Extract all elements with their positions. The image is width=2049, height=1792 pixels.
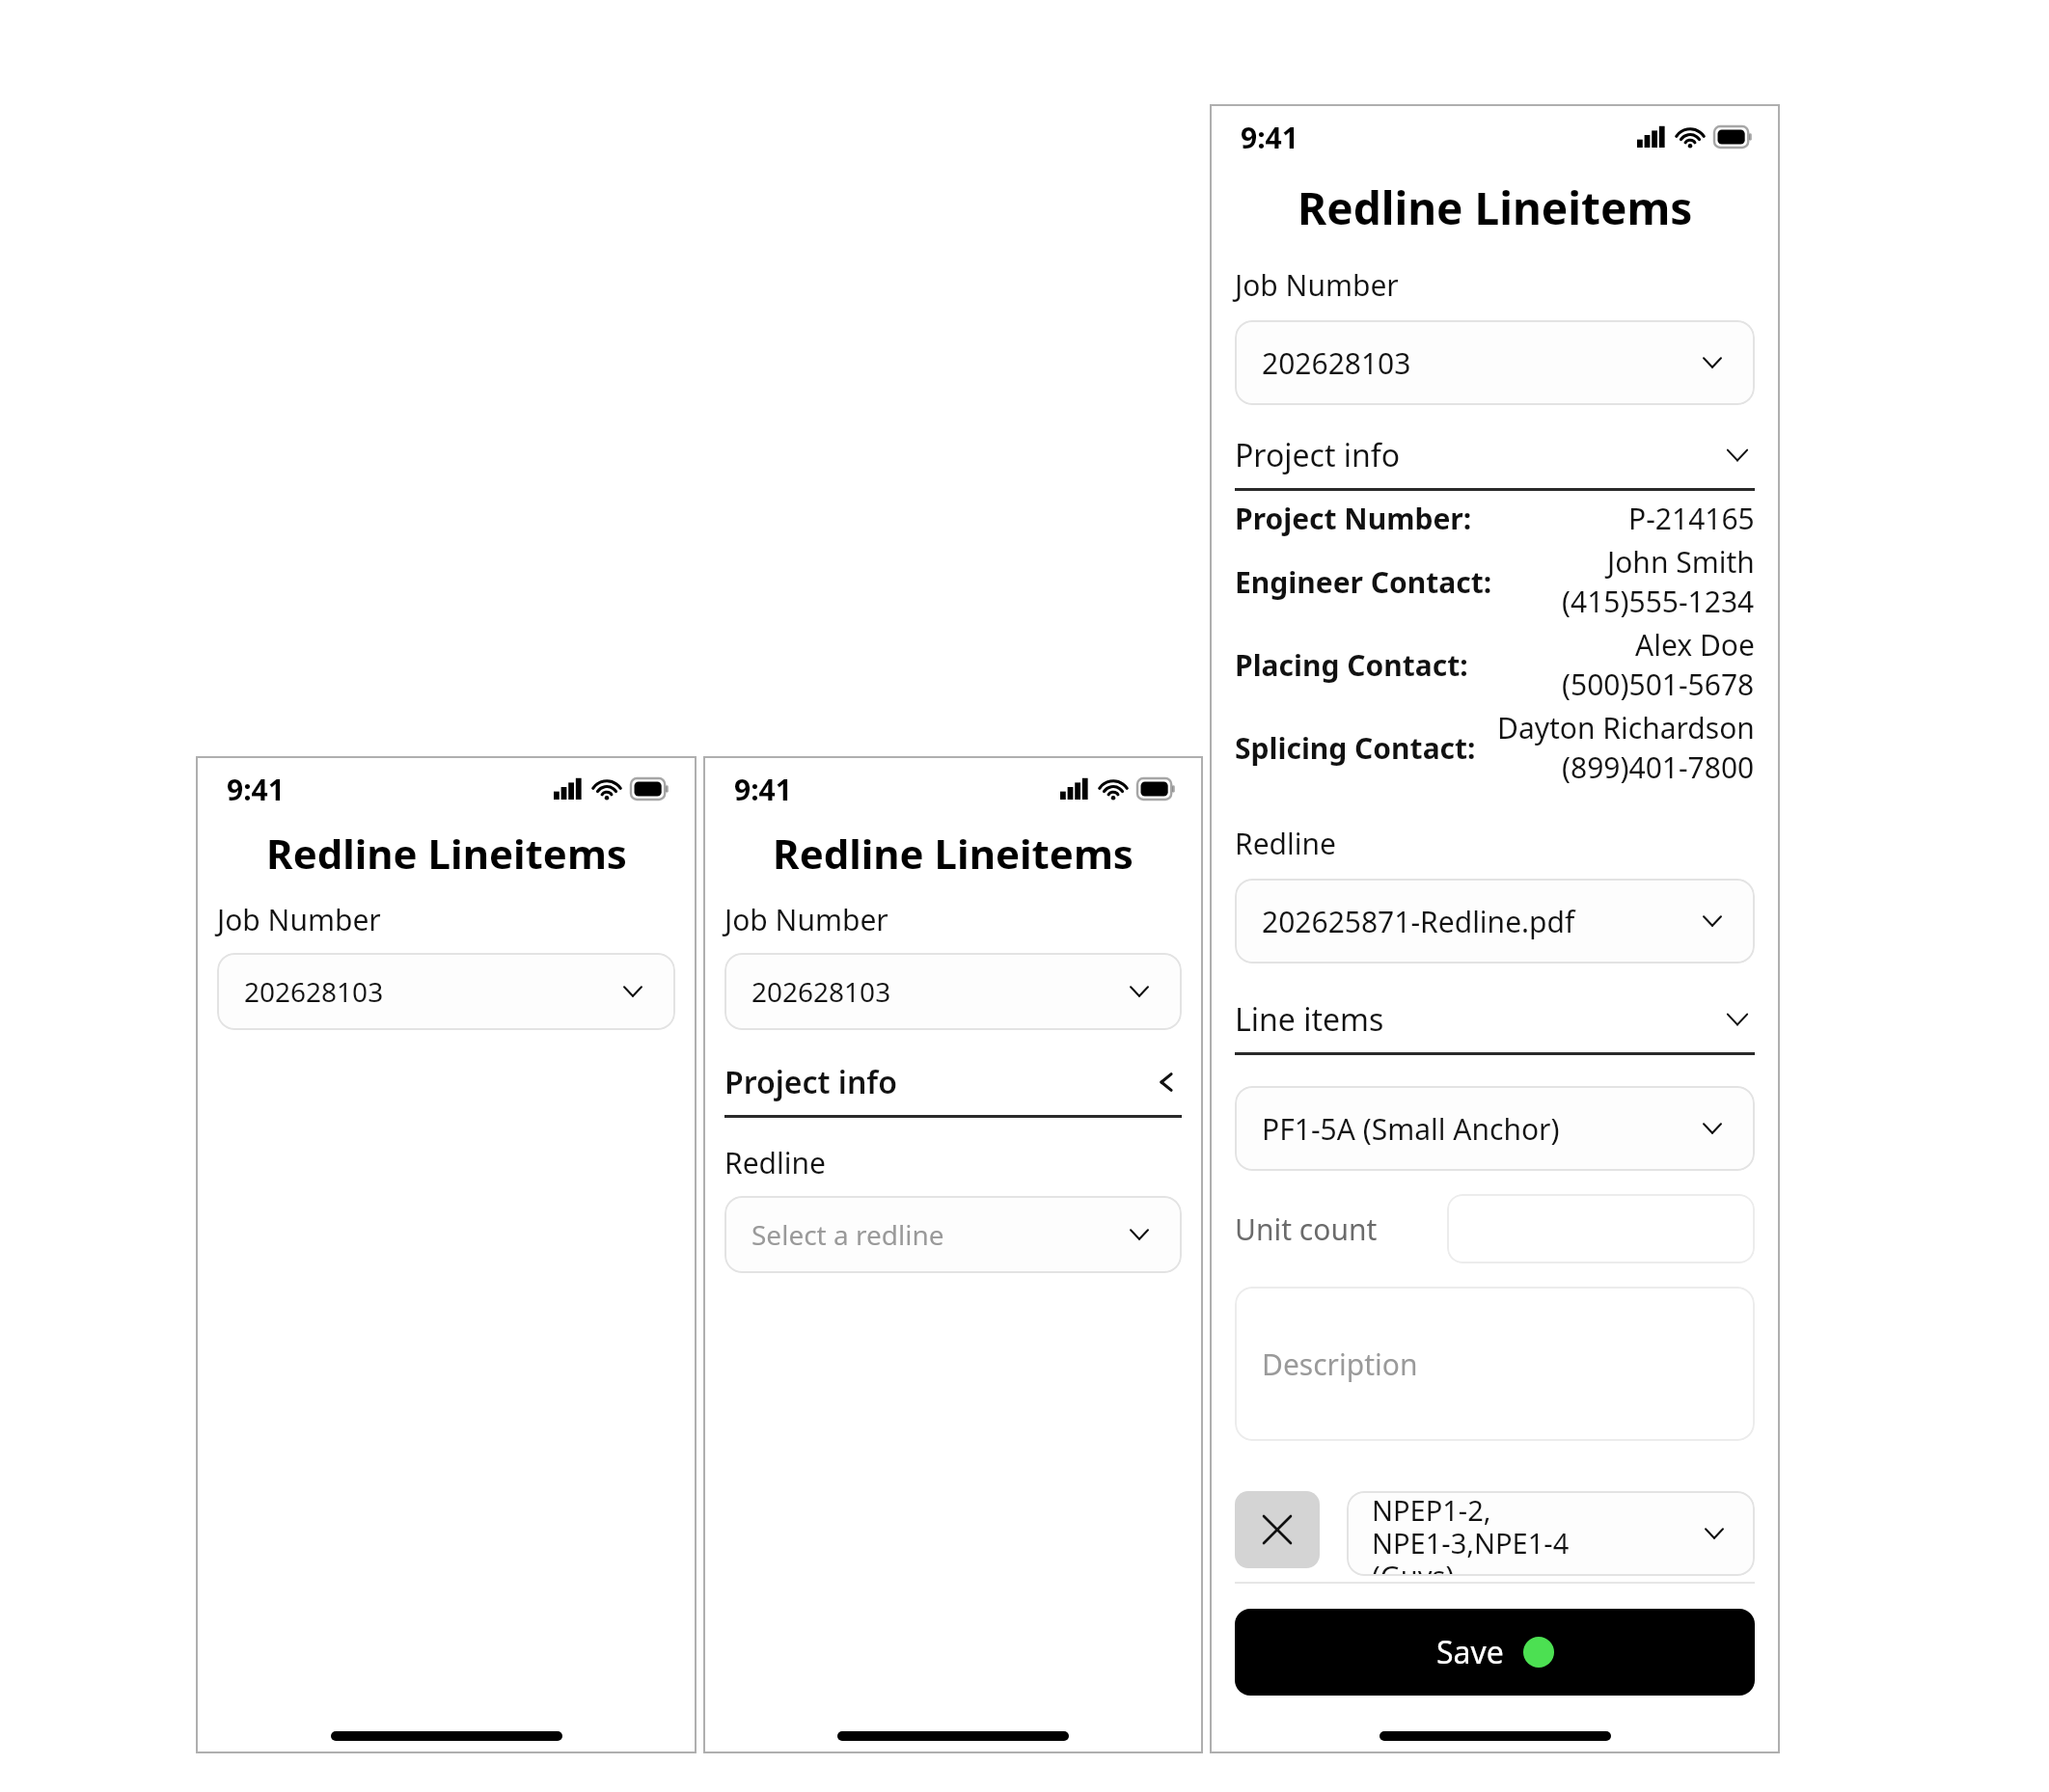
staticText: Select a redline: [751, 1216, 1108, 1253]
staticText: Description: [1262, 1344, 1418, 1384]
staticText: Alex Doe: [1635, 625, 1755, 665]
staticText: 9:41: [734, 770, 792, 809]
button[interactable]: 202628103: [724, 953, 1182, 1030]
staticText: Redline: [724, 1143, 826, 1182]
button[interactable]: NPEP1-2, NPE1-3,NPE1-4 (Guys): [1347, 1491, 1755, 1576]
staticText: Redline Lineitems: [773, 826, 1134, 881]
staticText: 202628103: [244, 973, 602, 1010]
staticText: 202628103: [751, 973, 1108, 1010]
staticText: Project info: [724, 1061, 1151, 1103]
staticText: Job Number: [1235, 265, 1399, 305]
staticText: Engineer Contact:: [1235, 562, 1562, 602]
staticText: Project info: [1235, 434, 1720, 476]
staticText: John Smith: [1607, 542, 1755, 582]
staticText: (899)401-7800: [1562, 747, 1755, 787]
staticText: Redline: [1235, 824, 1336, 863]
staticText: 9:41: [227, 770, 285, 809]
staticText: Job Number: [724, 900, 888, 939]
staticText: 9:41: [1241, 118, 1298, 157]
staticText: Job Number: [217, 900, 381, 939]
staticText: NPEP1-2, NPE1-3,NPE1-4 (Guys): [1372, 1491, 1687, 1576]
staticText: 202628103: [1262, 343, 1681, 383]
button[interactable]: 202628103: [1235, 320, 1755, 405]
button[interactable]: PF1-5A (Small Anchor): [1235, 1086, 1755, 1171]
staticText: 202625871-Redline.pdf: [1262, 902, 1681, 941]
staticText: Line items: [1235, 998, 1720, 1041]
button[interactable]: Remove line item: [1235, 1491, 1320, 1568]
staticText: Redline Lineitems: [1298, 177, 1693, 238]
staticText: P-214165: [1628, 499, 1755, 538]
button[interactable]: Save: [1235, 1609, 1755, 1696]
staticText: Unit count: [1235, 1209, 1447, 1249]
button[interactable]: [1447, 1194, 1755, 1263]
staticText: (415)555-1234: [1562, 582, 1755, 621]
staticText: (500)501-5678: [1562, 665, 1755, 704]
staticText: Project Number:: [1235, 499, 1628, 538]
button[interactable]: Project info: [1235, 434, 1755, 491]
button[interactable]: 202628103: [217, 953, 675, 1030]
button[interactable]: Select a redline: [724, 1196, 1182, 1273]
staticText: PF1-5A (Small Anchor): [1262, 1109, 1681, 1149]
button[interactable]: Project info: [724, 1061, 1182, 1118]
staticText: Placing Contact:: [1235, 645, 1562, 685]
button[interactable]: Description: [1235, 1287, 1755, 1441]
button[interactable]: Line items: [1235, 998, 1755, 1055]
button[interactable]: 202625871-Redline.pdf: [1235, 879, 1755, 964]
staticText: Redline Lineitems: [266, 826, 627, 881]
staticText: Dayton Richardson: [1497, 708, 1755, 747]
staticText: Save: [1436, 1631, 1504, 1673]
staticText: Splicing Contact:: [1235, 728, 1497, 768]
